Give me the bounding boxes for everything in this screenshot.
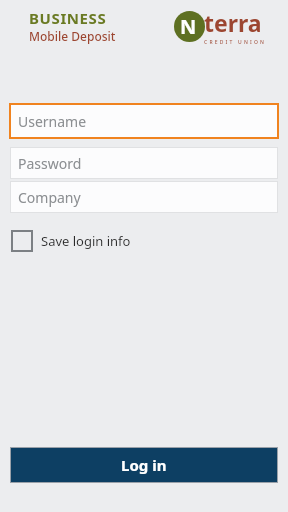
staticText: Company: [18, 188, 81, 207]
staticText: Password: [18, 154, 82, 173]
button[interactable]: Company: [10, 181, 278, 213]
staticText: terra: [204, 7, 262, 38]
staticText: Log in: [121, 455, 167, 475]
staticText: N: [180, 13, 197, 40]
button[interactable]: Save login info: [11, 230, 131, 252]
staticText: BUSINESS: [29, 8, 107, 28]
staticText: Username: [18, 112, 87, 131]
staticText: Save login info: [41, 232, 131, 250]
other: Interra Credit Union: [174, 7, 268, 46]
button[interactable]: Log in: [10, 447, 278, 483]
staticText: CREDIT UNION: [204, 39, 267, 46]
staticText: Mobile Deposit: [29, 28, 116, 44]
button[interactable]: Password: [10, 147, 278, 179]
button[interactable]: Username: [9, 103, 279, 139]
